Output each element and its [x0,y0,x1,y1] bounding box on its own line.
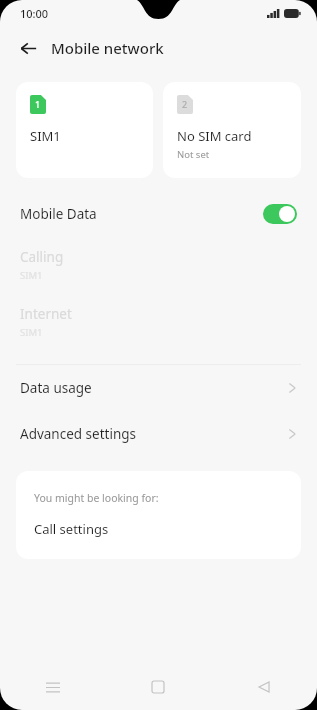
staticText: 1 [35,98,41,110]
staticText: Internet [20,305,72,323]
staticText: SIM1 [30,127,61,145]
button[interactable]: Call settings [34,520,109,538]
button[interactable]: Data usage [0,365,317,411]
staticText: Data usage [20,379,92,397]
button[interactable]: Back [10,30,46,66]
button[interactable]: Home [105,664,211,710]
staticText: SIM1 [20,326,43,339]
staticText: You might be looking for: [34,491,159,505]
button[interactable]: 2 [163,82,301,178]
staticText: SIM1 [20,269,43,282]
staticText: Call settings [34,520,109,538]
staticText: Advanced settings [20,425,137,443]
staticText: Not set [177,148,210,161]
button[interactable]: Recents [0,664,105,710]
staticText: 10:00 [20,6,49,21]
button[interactable]: 1 [16,82,153,178]
staticText: Mobile network [51,38,164,58]
button[interactable]: Mobile data toggle [263,204,297,224]
staticText: Mobile Data [20,205,97,223]
button[interactable]: Back [211,664,317,710]
staticText: Calling [20,248,64,266]
button[interactable]: Mobile Data [0,192,317,236]
staticText: 2 [182,98,188,110]
button[interactable]: Advanced settings [0,411,317,457]
staticText: No SIM card [177,127,252,145]
